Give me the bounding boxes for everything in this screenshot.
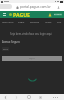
- button[interactable]: Tab: [0, 4, 12, 9]
- button[interactable]: Tabs: [35, 94, 46, 100]
- staticText: Recarga: [30, 20, 40, 23]
- staticText: Pagar: [18, 20, 25, 23]
- button[interactable]: Home: [22, 94, 35, 100]
- button[interactable]: Account: [56, 5, 60, 9]
- staticText: Ajuda: [45, 20, 52, 23]
- button[interactable]: More options: [46, 94, 64, 100]
- button[interactable]: ENTRAR: [54, 13, 62, 16]
- staticText: Meu Perfil: [2, 20, 14, 23]
- staticText: 2: [40, 96, 42, 99]
- other: Secure: [16, 6, 19, 9]
- staticText: PAGUE: [13, 11, 31, 18]
- button[interactable]: Recarga: [29, 20, 41, 23]
- button[interactable]: Meu Perfil: [1, 20, 15, 23]
- button[interactable]: Ajuda: [44, 20, 53, 23]
- staticText: ENTRAR: [54, 13, 62, 16]
- button[interactable]: Profile: [48, 13, 52, 17]
- button[interactable]: Pagar: [17, 20, 26, 23]
- staticText: Acesso Seguro: [2, 40, 20, 44]
- staticText: entrar: [3, 48, 9, 50]
- button[interactable]: entrar: [2, 47, 9, 51]
- button[interactable]: Forward: [11, 94, 22, 100]
- button[interactable]: Back: [0, 94, 11, 100]
- staticText: faca seu login aqui: [29, 32, 52, 36]
- button[interactable]: Menu: [2, 13, 6, 17]
- staticText: Seja bem-vindo: [10, 32, 29, 36]
- staticText: portal.pague.com.br: [20, 5, 51, 9]
- button[interactable]: Sair: [56, 20, 63, 23]
- staticText: Sair: [57, 20, 62, 23]
- staticText: AQUI: [29, 57, 35, 60]
